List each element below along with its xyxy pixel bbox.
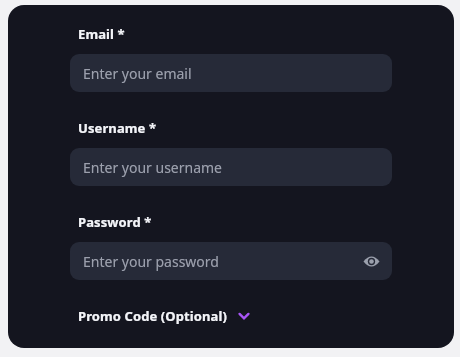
button[interactable]: Show password [360, 250, 382, 272]
staticText: Enter your password [83, 252, 219, 271]
staticText: Promo Code (Optional) [78, 307, 227, 325]
staticText: Email * [78, 25, 125, 43]
button[interactable]: Promo Code (Optional) [78, 307, 252, 325]
other: Expand promo code [236, 308, 252, 324]
button[interactable]: Enter your password [70, 242, 392, 280]
staticText: Enter your email [83, 64, 192, 83]
button[interactable]: Enter your email [70, 54, 392, 92]
staticText: Username * [78, 119, 157, 137]
staticText: Password * [78, 213, 152, 231]
staticText: Enter your username [83, 158, 223, 177]
button[interactable]: Enter your username [70, 148, 392, 186]
